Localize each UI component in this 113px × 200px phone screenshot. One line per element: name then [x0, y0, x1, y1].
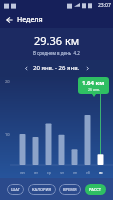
staticText: РАССТ	[89, 187, 102, 192]
staticText: В среднем в день 4.2	[33, 50, 80, 56]
staticText: 29.36 км	[34, 33, 80, 48]
button[interactable]: Back	[0, 11, 17, 28]
staticText: вс	[99, 170, 103, 175]
staticText: 23:07	[98, 2, 111, 9]
staticText: 10	[5, 132, 10, 137]
staticText: КАЛОРИЯ	[32, 187, 52, 192]
staticText: Неделя	[17, 15, 43, 25]
button[interactable]: КАЛОРИЯ	[28, 184, 56, 195]
staticText: ВРЕМЯ	[63, 187, 77, 192]
staticText: чт	[60, 170, 64, 175]
staticText: 20	[5, 79, 10, 84]
staticText: 26 янв.	[88, 87, 100, 92]
staticText: вт	[34, 170, 38, 175]
button[interactable]: ВРЕМЯ	[59, 184, 81, 195]
staticText: 1.64 км	[82, 79, 105, 87]
staticText: сб	[86, 170, 90, 175]
staticText: 20 янв. - 26 янв.	[33, 64, 80, 72]
staticText: пт	[73, 170, 77, 175]
button[interactable]: ШАГ	[7, 184, 24, 195]
button[interactable]: 1.64 км	[82, 79, 105, 92]
button[interactable]: РАССТ	[85, 184, 106, 195]
staticText: ср	[47, 170, 51, 175]
staticText: ШАГ	[11, 187, 20, 192]
button[interactable]: Previous week	[21, 63, 31, 73]
button[interactable]: Next week	[82, 63, 92, 73]
staticText: пн	[20, 170, 25, 175]
